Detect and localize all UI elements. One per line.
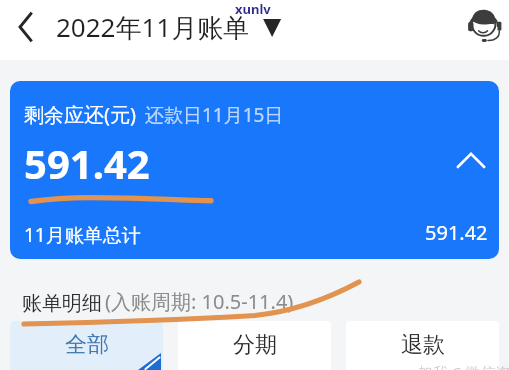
button[interactable]: Customer service [462, 4, 504, 46]
staticText: 账单明细 [22, 291, 102, 316]
button[interactable]: 剩余应还(元) [10, 81, 499, 259]
staticText: 加我 C 微信咨询 [418, 362, 509, 370]
button[interactable]: Back [4, 8, 42, 46]
staticText: 2022年11月账单 [56, 9, 250, 45]
staticText: 全部 [65, 331, 109, 359]
button[interactable]: 2022年11月账单 [56, 0, 284, 57]
button[interactable]: 退款 [346, 321, 499, 370]
staticText: 591.42 [425, 219, 488, 246]
staticText: (入账周期: 10.5-11.4) [105, 288, 294, 315]
staticText: 还款日11月15日 [145, 102, 284, 128]
button[interactable]: Collapse [453, 143, 489, 179]
staticText: xunlv [235, 0, 271, 18]
button[interactable]: 分期 [178, 321, 331, 370]
button[interactable]: 全部 [10, 321, 163, 370]
staticText: 退款 [401, 331, 445, 359]
staticText: 11月账单总计 [24, 222, 141, 248]
staticText: 分期 [233, 331, 277, 359]
staticText: 剩余应还(元) [24, 101, 136, 128]
staticText: 591.42 [24, 136, 150, 190]
